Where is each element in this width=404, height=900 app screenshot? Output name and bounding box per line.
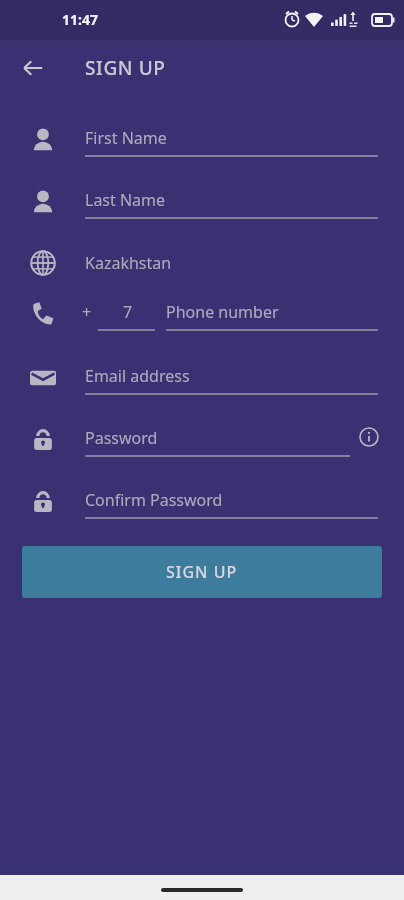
staticText: Phone number <box>166 301 279 323</box>
staticText: 7 <box>100 301 155 323</box>
staticText: Last Name <box>85 189 166 211</box>
button[interactable]: Confirm Password <box>0 480 404 524</box>
button[interactable]: + <box>0 292 404 336</box>
button[interactable]: Password info <box>352 420 386 454</box>
staticText: Password <box>85 427 158 449</box>
staticText: SIGN UP <box>166 561 238 583</box>
button[interactable]: Email address <box>0 356 404 400</box>
staticText: 11:47 <box>62 10 98 29</box>
staticText: Kazakhstan <box>85 252 172 274</box>
staticText: + <box>82 301 92 323</box>
button[interactable]: Back <box>12 47 54 89</box>
staticText: Email address <box>85 365 190 387</box>
staticText: First Name <box>85 127 167 149</box>
button[interactable]: Kazakhstan <box>0 242 404 284</box>
staticText: SIGN UP <box>85 55 166 81</box>
button[interactable]: Password <box>0 418 404 462</box>
button[interactable]: First Name <box>0 118 404 162</box>
staticText: Confirm Password <box>85 489 223 511</box>
button[interactable]: Last Name <box>0 180 404 224</box>
button[interactable]: SIGN UP <box>22 546 382 598</box>
